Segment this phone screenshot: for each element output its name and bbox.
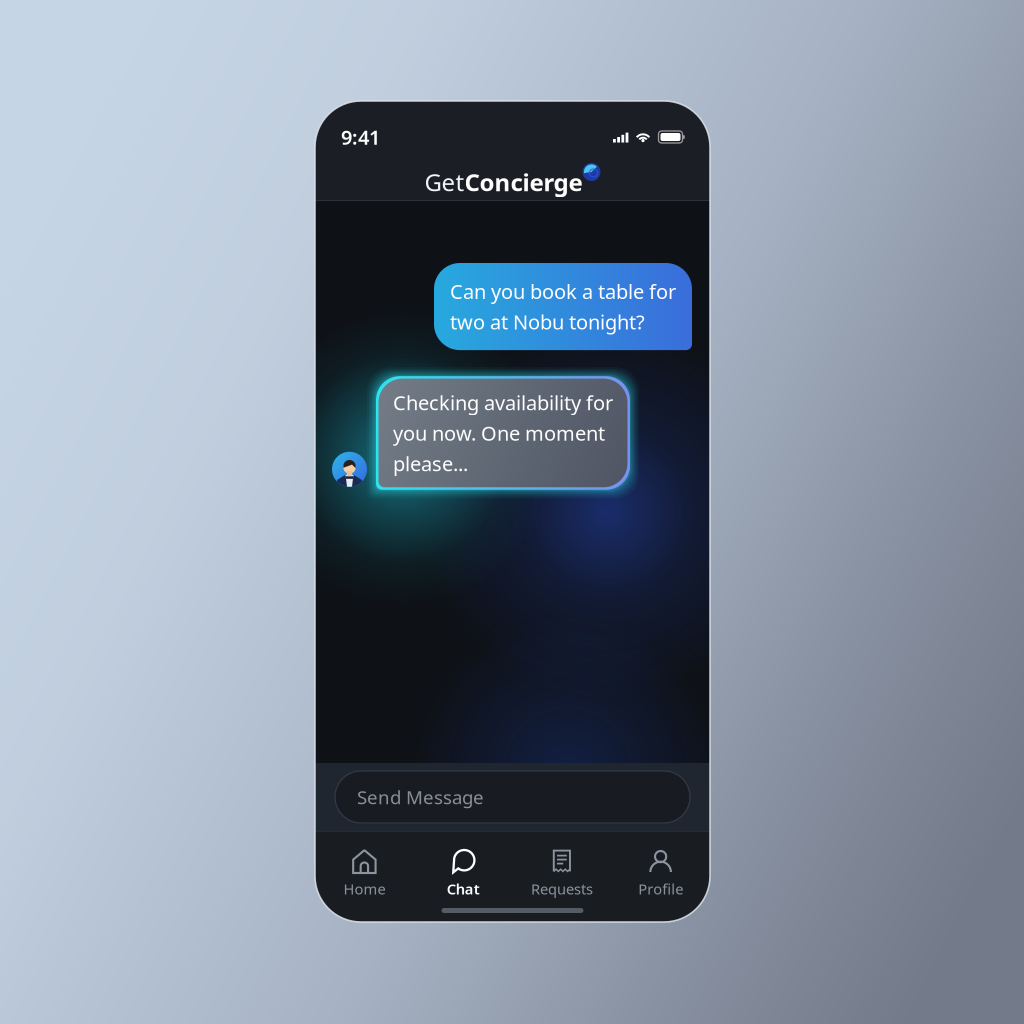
button[interactable]: Send Message xyxy=(335,771,690,823)
staticText: Requests xyxy=(531,879,593,898)
staticText: Can you book a table for two at Nobu ton… xyxy=(450,278,676,335)
staticText: Concierge xyxy=(464,166,582,198)
staticText: Checking availability for you now. One m… xyxy=(393,389,613,477)
staticText: Send Message xyxy=(357,785,484,809)
button[interactable]: Profile xyxy=(611,843,710,904)
staticText: Home xyxy=(343,879,385,898)
button[interactable]: Home xyxy=(315,843,414,904)
staticText: Chat xyxy=(447,879,480,898)
staticText: Profile xyxy=(638,879,683,898)
button[interactable]: Chat xyxy=(414,843,513,904)
staticText: 9:41 xyxy=(341,124,380,150)
button[interactable]: Requests xyxy=(512,843,611,904)
staticText: Get xyxy=(424,166,464,198)
